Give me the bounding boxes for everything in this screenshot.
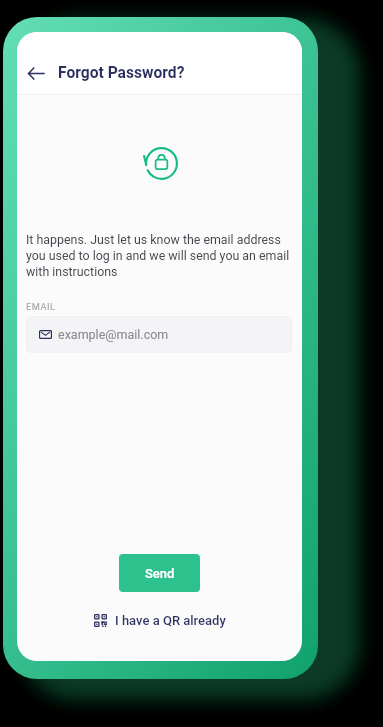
staticText: It happens. Just let us know the email a… <box>26 232 292 279</box>
staticText: Send <box>145 566 175 581</box>
button[interactable]: I have a QR already <box>90 607 230 633</box>
button[interactable]: Send <box>119 554 200 592</box>
staticText: example@mail.com <box>58 327 169 342</box>
staticText: Forgot Password? <box>58 64 185 82</box>
staticText: EMAIL <box>26 301 56 312</box>
button[interactable]: example@mail.com <box>26 316 292 353</box>
button[interactable]: Back <box>18 55 54 91</box>
staticText: I have a QR already <box>115 613 226 628</box>
